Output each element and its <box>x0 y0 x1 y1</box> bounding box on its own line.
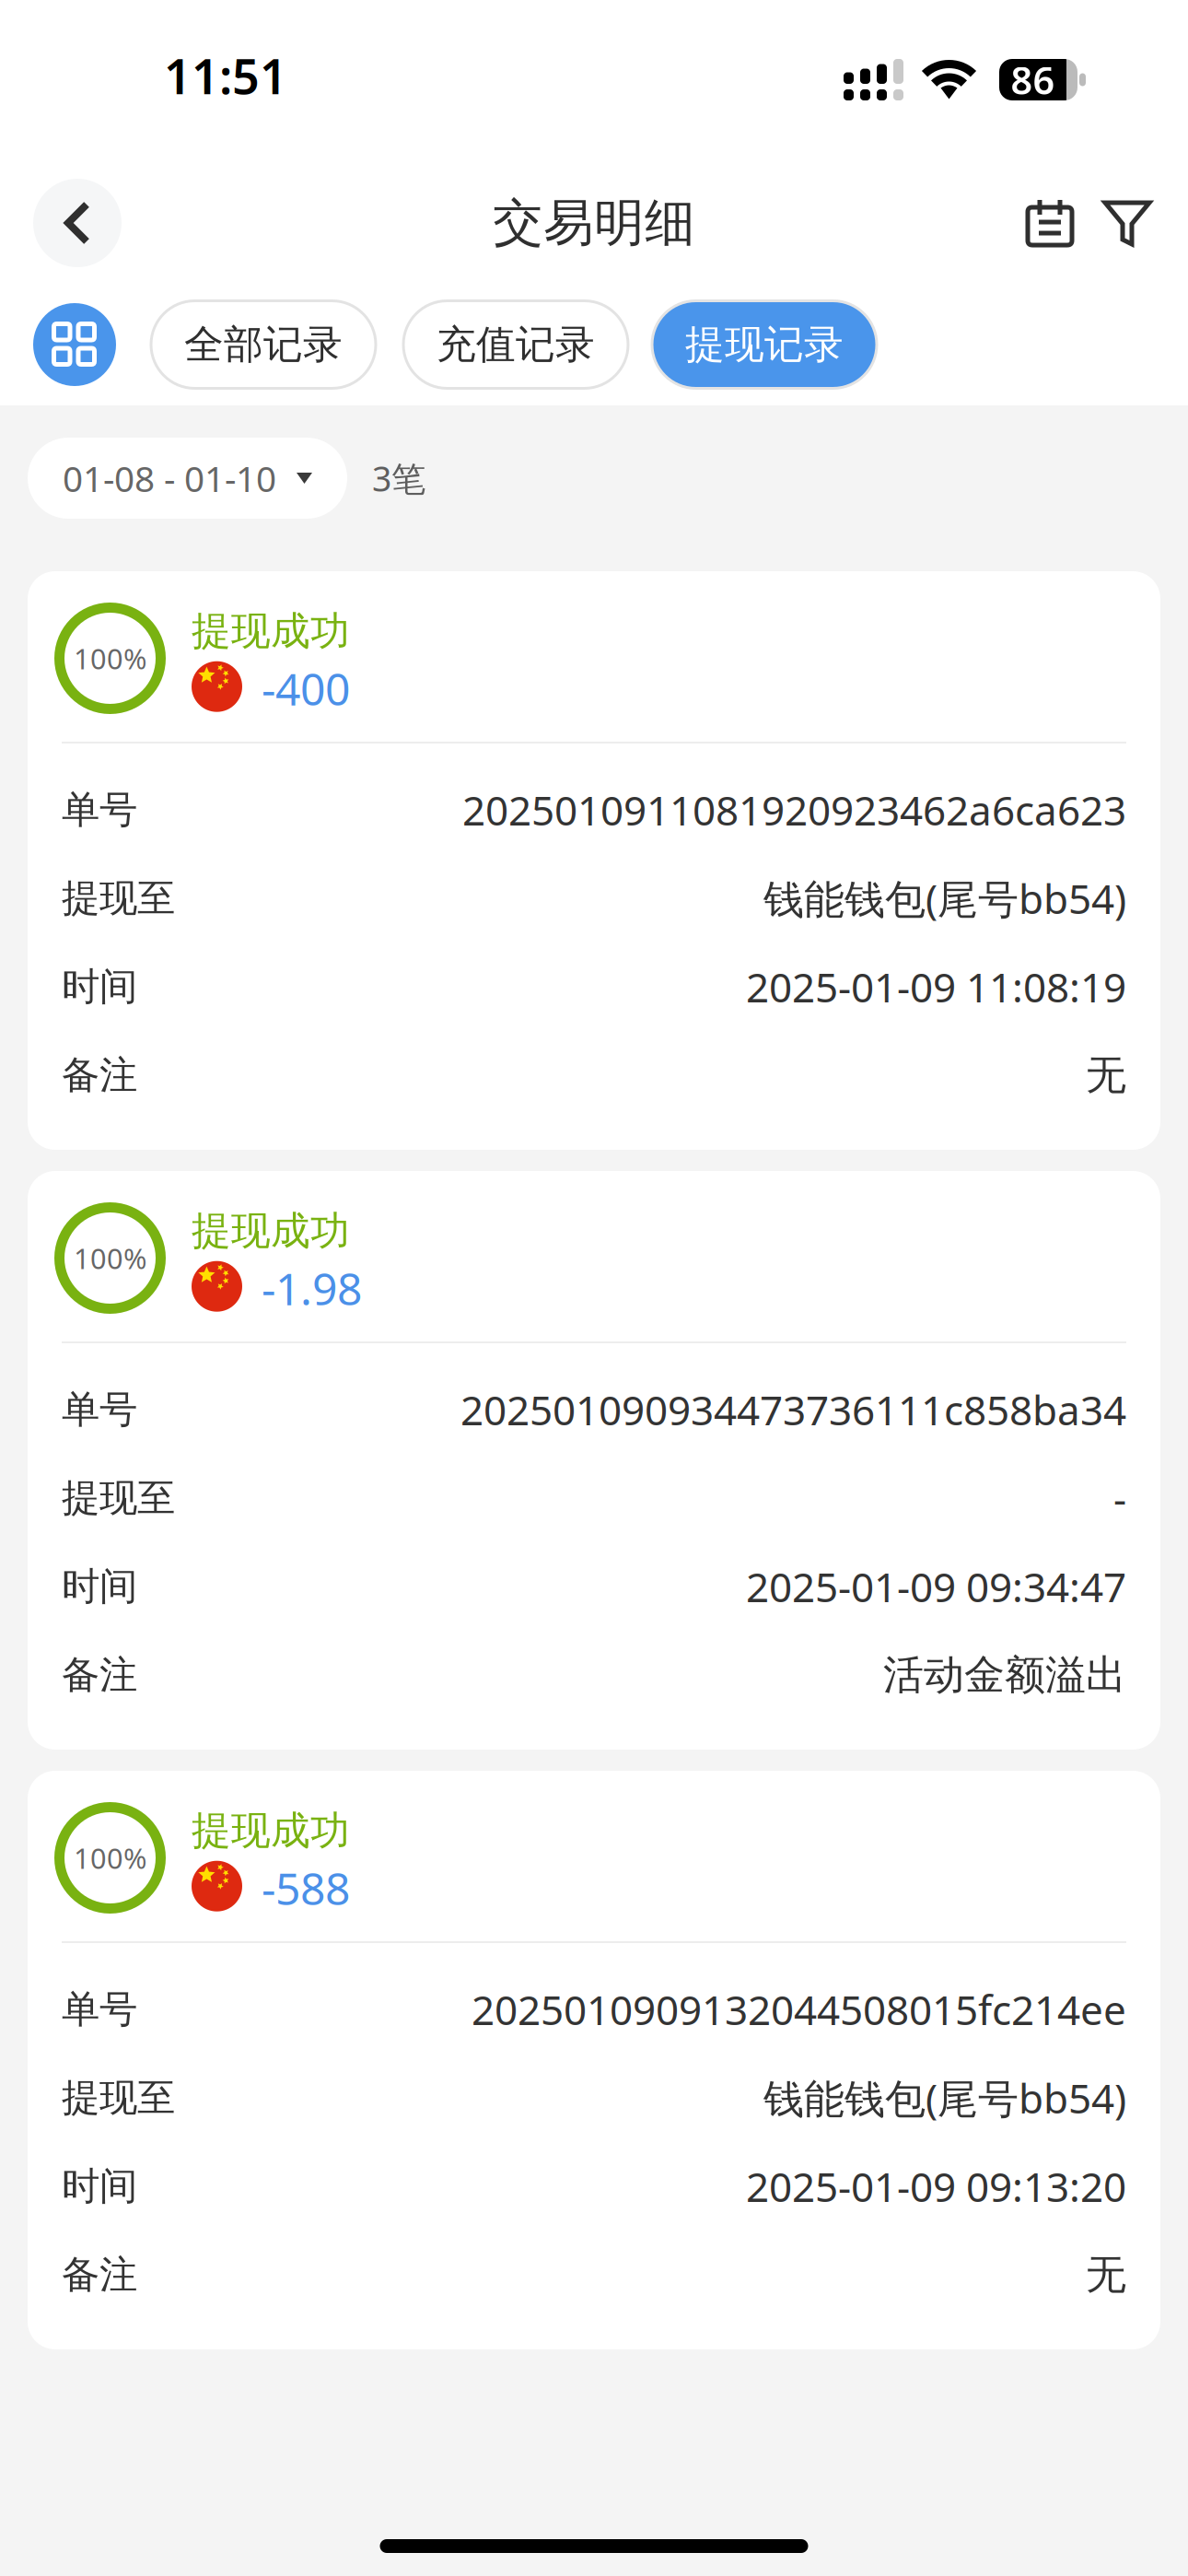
staticText: 单号 <box>62 1986 137 2033</box>
staticText: 充值记录 <box>437 320 595 369</box>
button[interactable]: Categories <box>33 303 116 386</box>
staticText: 提现成功 <box>192 1807 350 1855</box>
staticText: 11:51 <box>164 44 287 107</box>
staticText: -400 <box>262 659 350 718</box>
staticText: 2025-01-09 09:34:47 <box>746 1560 1126 1613</box>
staticText: 单号 <box>62 786 137 833</box>
staticText: 提现至 <box>62 2074 175 2121</box>
staticText: 提现成功 <box>192 607 350 655</box>
staticText: 01-08 - 01-10 <box>63 454 276 502</box>
button[interactable]: 100% <box>28 571 1160 1150</box>
button[interactable]: 100% <box>28 1771 1160 2349</box>
staticText: 86 <box>1011 54 1055 105</box>
staticText: 2025010911081920923462a6ca623 <box>462 783 1126 837</box>
staticText: 提现至 <box>62 1475 175 1521</box>
staticText: 提现记录 <box>685 320 844 369</box>
staticText: 无 <box>1086 2250 1126 2300</box>
staticText: 时间 <box>62 2163 137 2210</box>
staticText: 活动金额溢出 <box>883 1650 1126 1700</box>
staticText: -588 <box>262 1859 350 1917</box>
button[interactable]: 提现记录 <box>652 301 877 388</box>
staticText: 无 <box>1086 1050 1126 1100</box>
staticText: 3笔 <box>372 455 425 501</box>
staticText: 100% <box>74 1239 146 1277</box>
staticText: 钱能钱包(尾号bb54) <box>763 2071 1126 2125</box>
staticText: 100% <box>74 639 146 677</box>
staticText: 提现至 <box>62 875 175 922</box>
staticText: - <box>1113 1471 1126 1525</box>
staticText: 备注 <box>62 2251 137 2298</box>
staticText: 全部记录 <box>184 320 343 369</box>
staticText: 备注 <box>62 1052 137 1099</box>
staticText: -1.98 <box>262 1259 362 1317</box>
staticText: 单号 <box>62 1386 137 1433</box>
staticText: 202501090934473736111c858ba34 <box>460 1383 1126 1437</box>
button[interactable]: Back <box>33 179 122 267</box>
staticText: 备注 <box>62 1652 137 1698</box>
staticText: 时间 <box>62 1563 137 1610</box>
staticText: 100% <box>74 1839 146 1877</box>
staticText: 提现成功 <box>192 1207 350 1255</box>
button[interactable]: 100% <box>28 1171 1160 1750</box>
button[interactable]: 01-08 - 01-10 <box>28 438 347 519</box>
staticText: 交易明细 <box>493 192 695 254</box>
staticText: 钱能钱包(尾号bb54) <box>763 871 1126 925</box>
staticText: 2025-01-09 11:08:19 <box>746 960 1126 1014</box>
button[interactable]: Statement <box>1025 198 1075 248</box>
button[interactable]: 充值记录 <box>403 301 628 388</box>
button[interactable]: Filter <box>1102 198 1152 248</box>
button[interactable]: 全部记录 <box>151 301 376 388</box>
staticText: 2025010909132044508015fc214ee <box>472 1982 1126 2036</box>
staticText: 时间 <box>62 963 137 1010</box>
staticText: 2025-01-09 09:13:20 <box>746 2159 1126 2213</box>
